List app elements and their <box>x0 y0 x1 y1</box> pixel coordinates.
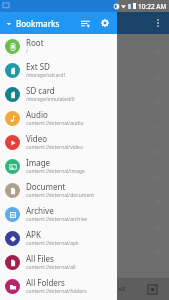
staticText: /storage/sdcard1 <box>26 72 67 79</box>
staticText: /storage/emulated/0 <box>26 96 75 103</box>
staticText: content://external/archive <box>26 216 88 223</box>
staticText: content://external/document <box>26 192 95 199</box>
staticText: content://external/folders <box>26 288 87 295</box>
staticText: Ext SD <box>26 61 50 72</box>
staticText: 10:22 AM <box>138 2 167 11</box>
button[interactable]: Archive <box>0 202 117 226</box>
staticText: Archive <box>26 205 54 216</box>
staticText: Document <box>26 181 66 192</box>
button[interactable]: SD card <box>0 82 117 106</box>
button[interactable]: APK <box>0 226 117 250</box>
staticText: Bookmarks <box>16 18 60 29</box>
staticText: / <box>26 48 28 55</box>
staticText: Audio <box>26 109 48 120</box>
staticText: Image <box>26 157 51 168</box>
staticText: content://external/image <box>26 168 85 175</box>
button[interactable]: Root <box>0 34 117 58</box>
button[interactable]: Settings <box>95 13 115 33</box>
button[interactable]: Video <box>0 130 117 154</box>
staticText: All Folders <box>26 277 65 288</box>
button[interactable]: All Folders <box>0 274 117 298</box>
button[interactable]: Change view <box>141 278 163 300</box>
button[interactable]: All Files <box>0 250 117 274</box>
button[interactable]: Ext SD <box>0 58 117 82</box>
staticText: All Files <box>26 253 54 264</box>
staticText: AZ <box>118 285 126 293</box>
staticText: content://external/all <box>26 264 76 271</box>
staticText: content://external/video <box>26 144 83 151</box>
staticText: APK <box>26 229 41 240</box>
button[interactable]: Bookmarks <box>0 18 60 29</box>
button[interactable]: Document <box>0 178 117 202</box>
staticText: Root <box>26 37 44 48</box>
button[interactable]: Audio <box>0 106 117 130</box>
staticText: Video <box>26 133 48 144</box>
button[interactable]: Image <box>0 154 117 178</box>
staticText: content://external/apk <box>26 240 79 247</box>
button[interactable]: More options <box>147 12 169 34</box>
button[interactable]: Edit bookmarks <box>75 13 95 33</box>
button[interactable]: Sort alphabetically <box>111 278 133 300</box>
staticText: content://external/audio <box>26 120 84 127</box>
staticText: SD card <box>26 85 55 96</box>
